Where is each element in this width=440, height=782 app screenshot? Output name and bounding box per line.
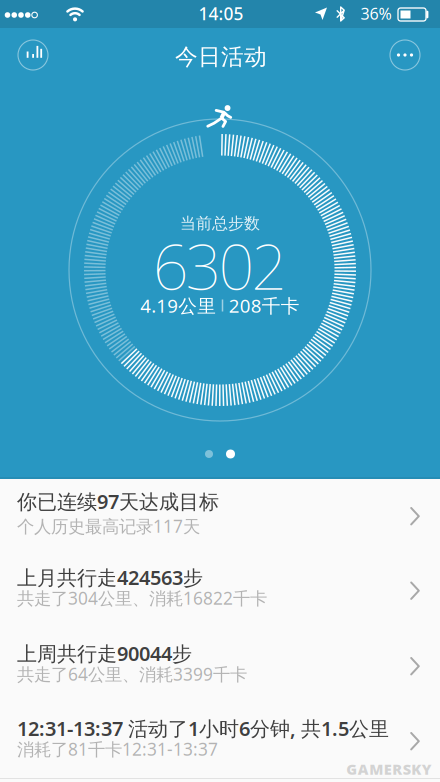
staticText: 今日活动 (175, 43, 267, 71)
staticText: 4.19公里 (140, 293, 216, 318)
staticText: 共走了64公里、消耗3399千卡 (17, 662, 247, 685)
staticText: 消耗了81千卡12:31-13:37 (17, 737, 218, 760)
staticText: GAMERSKY (346, 759, 432, 779)
staticText: 14:05 (198, 2, 243, 25)
staticText: 上周共行走90044步 (17, 640, 192, 667)
button[interactable] (16, 38, 50, 72)
staticText: 208千卡 (229, 293, 300, 318)
staticText: 你已连续97天达成目标 (17, 488, 219, 515)
staticText: 上月共行走424563步 (17, 564, 203, 591)
staticText: 共走了304公里、消耗16822千卡 (17, 586, 267, 609)
staticText: 36% (360, 3, 391, 24)
button[interactable]: 上月共行走424563步 (0, 552, 440, 628)
button[interactable]: 上周共行走90044步 (0, 628, 440, 703)
staticText: 12:31-13:37 活动了1小时6分钟, 共1.5公里 (17, 715, 389, 742)
button[interactable] (388, 38, 422, 72)
staticText: 6302 (153, 224, 287, 307)
staticText: 当前总步数 (180, 214, 260, 233)
staticText: 个人历史最高记录117天 (17, 514, 200, 537)
button[interactable]: 你已连续97天达成目标 (0, 479, 440, 552)
button[interactable]: 12:31-13:37 活动了1小时6分钟, 共1.5公里 (0, 703, 440, 778)
